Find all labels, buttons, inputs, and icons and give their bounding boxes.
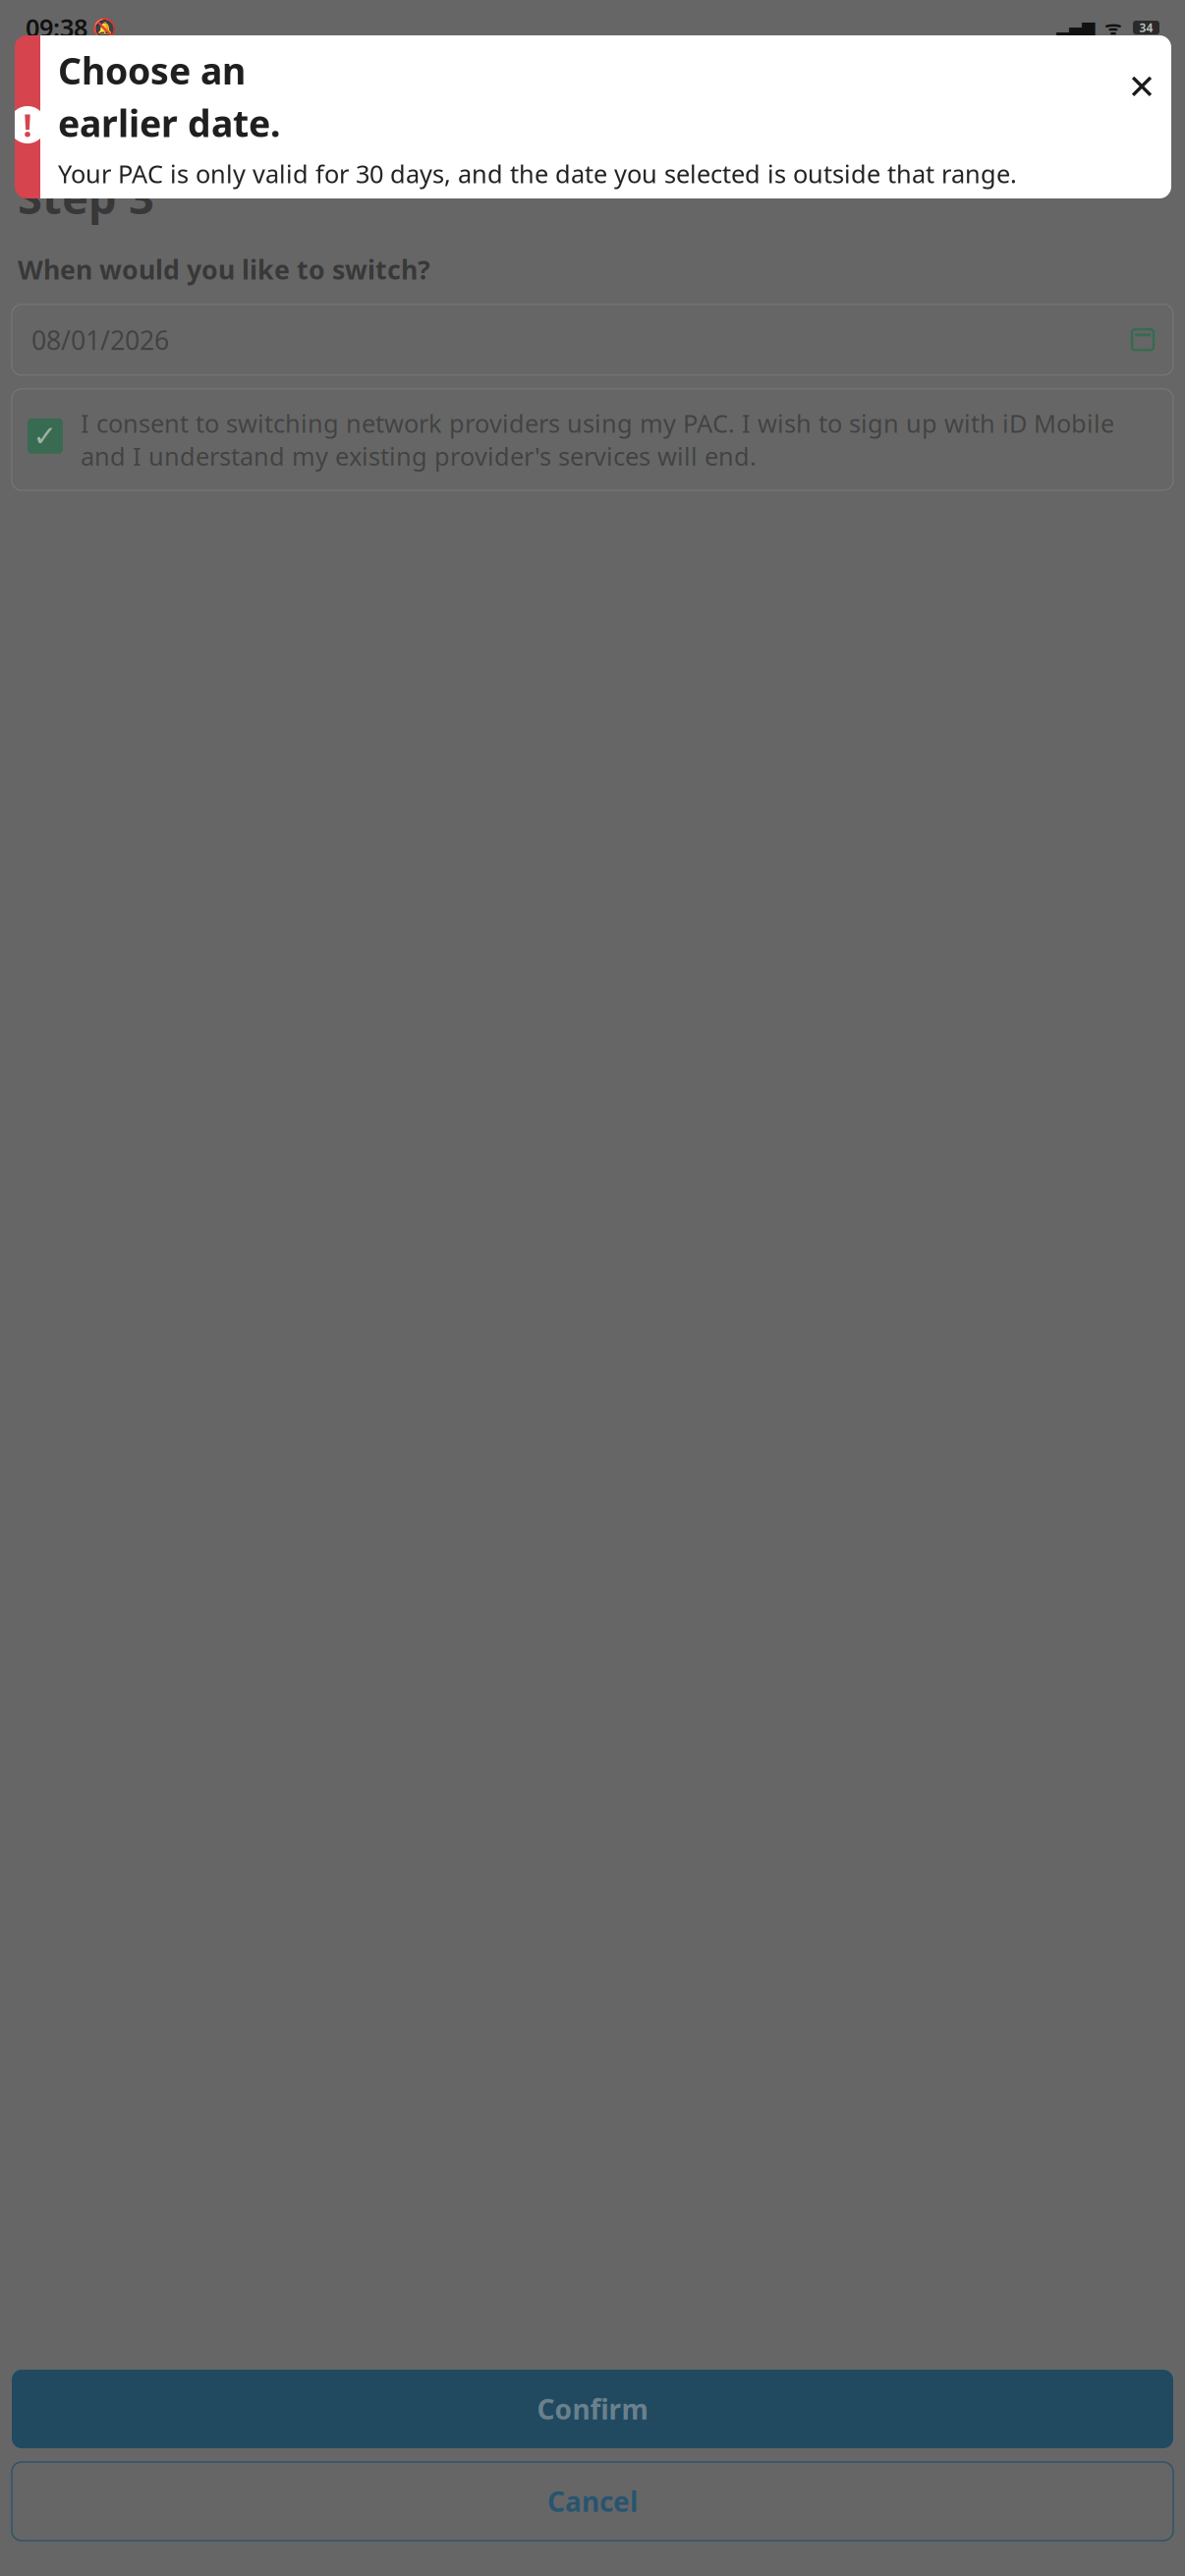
- staticText: 08/01/2026: [31, 322, 169, 357]
- staticText: [1121, 13, 1133, 42]
- button[interactable]: Back: [8, 45, 51, 88]
- staticText: Choose an: [58, 46, 246, 95]
- staticText: ▂▄▆: [1056, 18, 1095, 37]
- staticText: Step 3: [18, 167, 154, 226]
- button[interactable]: Confirm: [12, 2370, 1173, 2448]
- button[interactable]: 08/01/2026: [12, 304, 1173, 375]
- staticText: 🔕: [87, 14, 117, 41]
- staticText: S: [18, 102, 42, 161]
- staticText: ᯤ: [1095, 15, 1121, 40]
- staticText: 09:38: [26, 11, 87, 44]
- staticText: Confirm: [537, 2391, 648, 2427]
- staticText: Your PAC is only valid for 30 days, and …: [58, 157, 1017, 190]
- staticText: Cancel: [547, 2483, 638, 2520]
- staticText: 34: [1139, 20, 1153, 35]
- button[interactable]: Close: [1122, 67, 1161, 107]
- staticText: ‹: [21, 32, 38, 102]
- staticText: !: [23, 104, 32, 146]
- staticText: ✓: [33, 420, 57, 452]
- staticText: When would you like to switch?: [18, 252, 430, 287]
- staticText: I consent to switching network providers…: [81, 407, 1114, 473]
- staticText: earlier date.: [58, 98, 280, 147]
- button[interactable]: Cancel: [12, 2462, 1173, 2541]
- staticText: ✕: [1128, 68, 1156, 106]
- button[interactable]: ✓: [12, 389, 1173, 490]
